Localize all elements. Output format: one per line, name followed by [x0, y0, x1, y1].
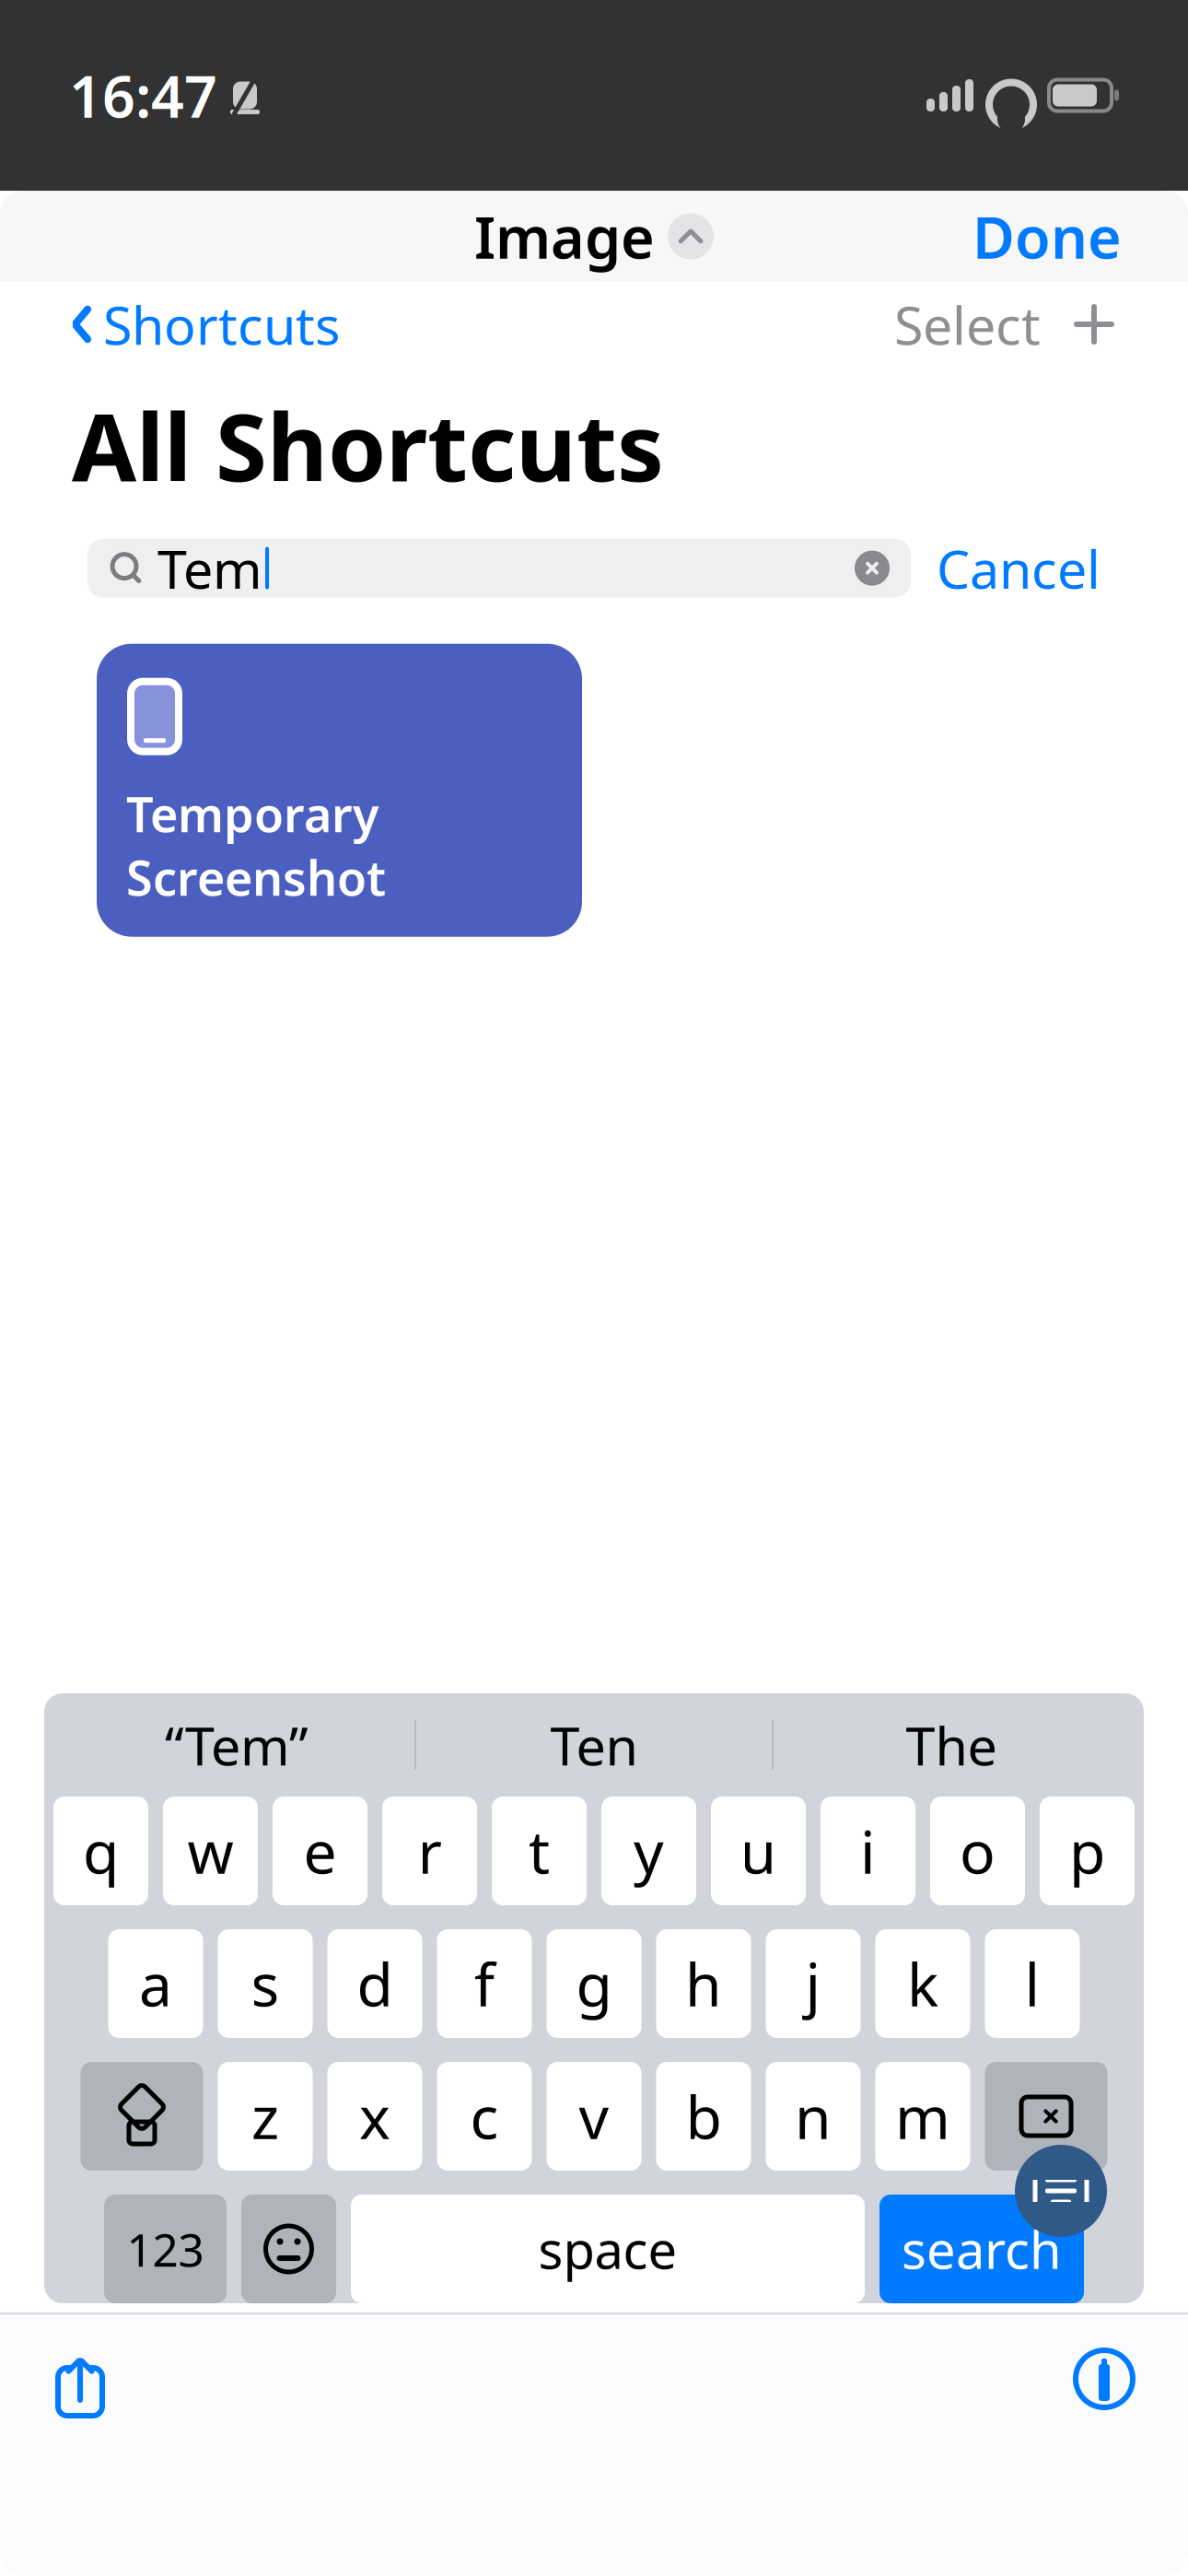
button[interactable]: d: [327, 1929, 422, 2038]
staticText: m: [895, 2077, 950, 2155]
staticText: h: [685, 1944, 722, 2023]
button[interactable]: n: [766, 2062, 861, 2171]
button[interactable]: Cancel: [937, 533, 1101, 603]
button[interactable]: f: [437, 1929, 532, 2038]
button[interactable]: t: [492, 1797, 587, 1905]
staticText: Tem: [157, 533, 262, 603]
button[interactable]: Shortcuts: [72, 280, 340, 369]
button[interactable]: w: [163, 1797, 258, 1905]
button[interactable]: Scan text: [1015, 2145, 1107, 2237]
staticText: k: [907, 1944, 938, 2023]
button[interactable]: e: [273, 1797, 367, 1905]
staticText: p: [1069, 1812, 1105, 1890]
staticText: y: [634, 1812, 664, 1890]
staticText: 16:47: [69, 57, 217, 134]
staticText: search: [902, 2215, 1062, 2283]
button[interactable]: i: [821, 1797, 915, 1905]
staticText: l: [1025, 1944, 1040, 2023]
button[interactable]: q: [53, 1797, 148, 1905]
staticText: Ten: [550, 1710, 638, 1780]
staticText: Temporary Screenshot: [126, 782, 386, 909]
staticText: e: [303, 1812, 337, 1890]
staticText: Select: [894, 289, 1041, 359]
staticText: r: [418, 1812, 442, 1890]
button[interactable]: Clear text: [854, 550, 911, 587]
staticText: a: [139, 1944, 172, 2023]
button[interactable]: Markup: [1074, 2348, 1188, 2409]
button[interactable]: Ten: [416, 1710, 772, 1780]
staticText: q: [83, 1812, 119, 1890]
staticText: n: [795, 2077, 832, 2155]
button[interactable]: “Tem”: [59, 1710, 414, 1780]
button[interactable]: The: [774, 1710, 1129, 1780]
staticText: space: [538, 2215, 677, 2283]
button[interactable]: k: [875, 1929, 970, 2038]
button[interactable]: Add shortcut: [1041, 293, 1116, 356]
button[interactable]: b: [656, 2062, 751, 2171]
staticText: o: [960, 1812, 996, 1890]
button[interactable]: a: [108, 1929, 203, 2038]
button[interactable]: m: [875, 2062, 970, 2171]
button[interactable]: Change format: [668, 213, 714, 259]
staticText: x: [359, 2077, 390, 2155]
button[interactable]: Done: [973, 198, 1122, 275]
button[interactable]: y: [601, 1797, 696, 1905]
button[interactable]: Shift: [81, 2062, 203, 2171]
staticText: 123: [127, 2219, 204, 2279]
button[interactable]: h: [656, 1929, 751, 2038]
staticText: i: [860, 1812, 876, 1890]
staticText: All Shortcuts: [72, 383, 664, 507]
button[interactable]: x: [327, 2062, 422, 2171]
staticText: Done: [973, 198, 1122, 275]
staticText: g: [576, 1944, 612, 2023]
staticText: f: [474, 1944, 495, 2023]
button[interactable]: v: [547, 2062, 641, 2171]
button[interactable]: s: [218, 1929, 313, 2038]
button[interactable]: Select: [894, 280, 1041, 369]
staticText: Cancel: [937, 533, 1101, 603]
button[interactable]: search: [879, 2195, 1084, 2303]
staticText: “Tem”: [165, 1710, 309, 1780]
button[interactable]: 123: [104, 2195, 227, 2303]
staticText: t: [529, 1812, 550, 1890]
button[interactable]: z: [218, 2062, 313, 2171]
button[interactable]: l: [985, 1929, 1080, 2038]
button[interactable]: u: [711, 1797, 806, 1905]
staticText: j: [805, 1944, 821, 2023]
staticText: The: [906, 1710, 997, 1780]
button[interactable]: Emoji: [241, 2195, 336, 2303]
staticText: c: [470, 2077, 499, 2155]
staticText: Shortcuts: [103, 289, 340, 359]
button[interactable]: p: [1040, 1797, 1135, 1905]
button[interactable]: Share: [0, 2346, 107, 2412]
button[interactable]: Temporary Screenshot: [97, 644, 582, 937]
button[interactable]: o: [930, 1797, 1025, 1905]
button[interactable]: c: [437, 2062, 532, 2171]
staticText: z: [251, 2077, 279, 2155]
staticText: w: [187, 1812, 233, 1890]
button[interactable]: r: [382, 1797, 477, 1905]
staticText: b: [686, 2077, 722, 2155]
staticText: v: [579, 2077, 609, 2155]
button[interactable]: space: [351, 2195, 865, 2303]
staticText: u: [740, 1812, 777, 1890]
staticText: Image: [474, 198, 655, 275]
button[interactable]: Delete: [985, 2062, 1107, 2171]
button[interactable]: g: [547, 1929, 641, 2038]
staticText: d: [357, 1944, 393, 2023]
button[interactable]: j: [766, 1929, 861, 2038]
staticText: s: [251, 1944, 280, 2023]
